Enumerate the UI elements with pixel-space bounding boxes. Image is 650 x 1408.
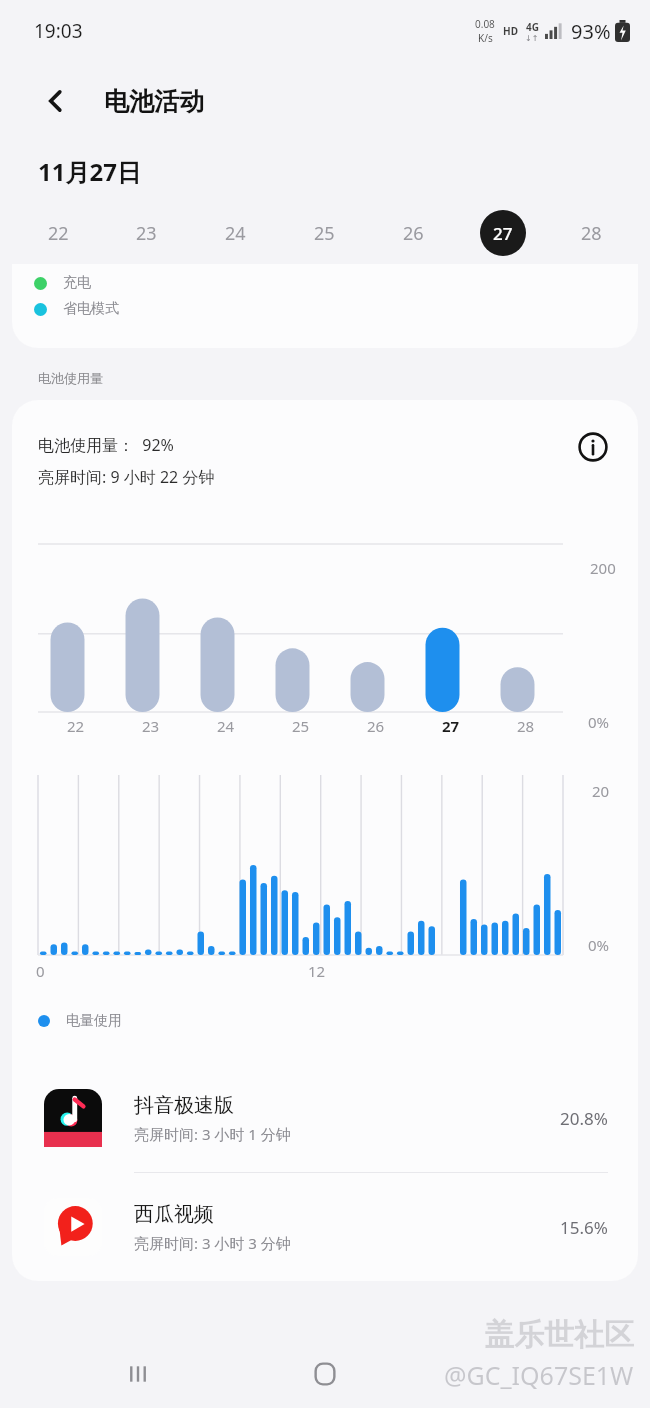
staticText: 25: [314, 221, 335, 246]
staticText: 28: [517, 716, 535, 736]
staticText: 11月27日: [38, 155, 141, 188]
staticText: K/s: [478, 31, 493, 45]
staticText: 亮屏时间: 3 小时 1 分钟: [134, 1124, 291, 1144]
staticText: HD: [503, 24, 518, 38]
staticText: 抖音极速版: [134, 1093, 234, 1118]
staticText: 22: [48, 221, 69, 246]
staticText: 22: [67, 716, 85, 736]
staticText: 电池活动: [104, 86, 204, 117]
button[interactable]: 28: [547, 202, 636, 264]
button[interactable]: 26: [369, 202, 458, 264]
staticText: 27: [442, 716, 460, 736]
staticText: 电池使用量： 92%: [38, 434, 174, 456]
staticText: 亮屏时间: 3 小时 3 分钟: [134, 1233, 291, 1253]
staticText: 充电: [63, 274, 91, 292]
staticText: ↓↑: [525, 34, 539, 43]
staticText: 20.8%: [560, 1107, 608, 1130]
staticText: 19:03: [34, 18, 83, 44]
button[interactable]: Recents: [110, 1346, 166, 1402]
staticText: 28: [581, 221, 602, 246]
button[interactable]: Info: [570, 424, 616, 470]
button[interactable]: 抖音极速版: [12, 1064, 638, 1172]
button[interactable]: 23: [102, 202, 191, 264]
staticText: 0%: [588, 712, 610, 732]
staticText: 23: [136, 221, 157, 246]
staticText: 26: [367, 716, 385, 736]
button[interactable]: Back: [30, 75, 82, 127]
staticText: 23: [142, 716, 160, 736]
button[interactable]: 27: [458, 202, 547, 264]
staticText: 4G: [526, 20, 539, 34]
staticText: 93%: [571, 18, 611, 45]
staticText: 27: [493, 222, 513, 245]
staticText: 12: [308, 961, 326, 981]
button[interactable]: 西瓜视频: [12, 1173, 638, 1281]
staticText: 15.6%: [560, 1216, 608, 1239]
staticText: 省电模式: [63, 300, 119, 318]
staticText: 西瓜视频: [134, 1202, 214, 1227]
staticText: 200: [590, 558, 616, 578]
staticText: 亮屏时间: 9 小时 22 分钟: [38, 466, 215, 488]
staticText: 24: [225, 221, 246, 246]
button[interactable]: 24: [191, 202, 280, 264]
staticText: 20: [592, 781, 610, 801]
button[interactable]: 25: [280, 202, 369, 264]
staticText: 25: [292, 716, 310, 736]
button[interactable]: 22: [14, 202, 102, 264]
staticText: 0.08: [475, 17, 495, 31]
staticText: @GC_IQ67SE1W: [444, 1358, 634, 1392]
staticText: 0%: [588, 935, 610, 955]
staticText: 盖乐世社区: [484, 1316, 634, 1354]
staticText: 电池使用量: [38, 370, 103, 386]
staticText: 电量使用: [66, 1012, 122, 1030]
staticText: 0: [36, 961, 45, 981]
staticText: 24: [217, 716, 235, 736]
staticText: 26: [403, 221, 424, 246]
button[interactable]: Home: [297, 1346, 353, 1402]
